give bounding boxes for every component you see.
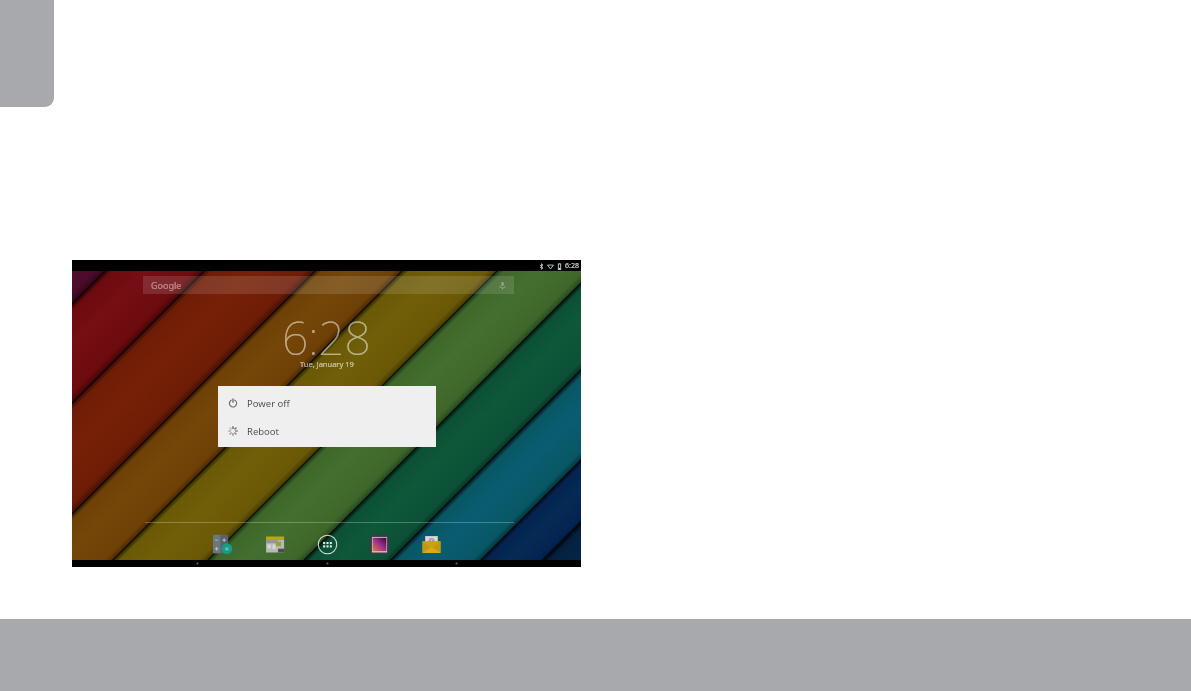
button[interactable]: Back: [193, 560, 201, 567]
staticText: 6:28: [565, 261, 579, 271]
staticText: 6:28: [282, 306, 371, 369]
staticText: Power off: [247, 397, 290, 410]
button[interactable]: All apps: [317, 534, 338, 555]
other: Voice search: [498, 281, 507, 290]
button[interactable]: Reboot: [218, 417, 436, 445]
button[interactable]: Files: [265, 534, 286, 555]
button[interactable]: Google: [143, 276, 514, 294]
button[interactable]: Recents: [452, 560, 460, 567]
staticText: Reboot: [247, 425, 280, 438]
staticText: Google: [151, 279, 182, 291]
button[interactable]: Email: [421, 534, 442, 555]
button[interactable]: Home: [323, 560, 331, 567]
button[interactable]: Calculator: [213, 534, 234, 555]
button[interactable]: Power off: [218, 389, 436, 417]
button[interactable]: Gallery: [369, 534, 390, 555]
staticText: Tue, January 19: [300, 359, 354, 369]
